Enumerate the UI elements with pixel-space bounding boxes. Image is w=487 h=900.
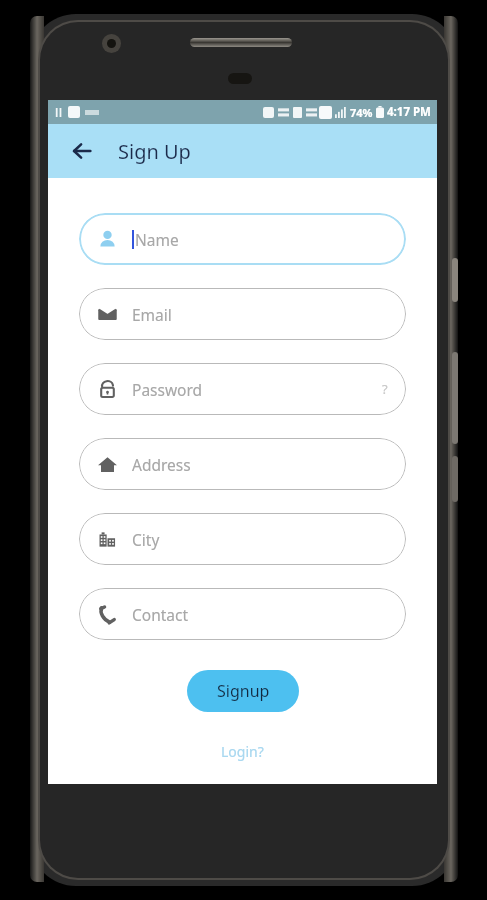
button[interactable]: Back xyxy=(62,131,102,171)
staticText: City xyxy=(132,529,160,550)
button[interactable]: City xyxy=(79,513,406,565)
staticText: Address xyxy=(132,454,191,475)
staticText: ? xyxy=(382,380,388,398)
staticText: 74% xyxy=(350,105,373,120)
staticText: Login? xyxy=(221,742,264,761)
staticText: Contact xyxy=(132,604,189,625)
staticText: Password xyxy=(132,379,203,400)
staticText: 4:17 PM xyxy=(387,104,431,120)
staticText: Signup xyxy=(217,680,270,702)
button[interactable]: Name xyxy=(79,213,406,265)
button[interactable]: Password xyxy=(79,363,406,415)
staticText: Name xyxy=(135,229,179,250)
staticText: Sign Up xyxy=(118,138,191,165)
button[interactable]: Email xyxy=(79,288,406,340)
staticText: Email xyxy=(132,304,172,325)
button[interactable]: Signup xyxy=(187,670,299,712)
button[interactable]: Login? xyxy=(221,742,264,761)
button[interactable]: Contact xyxy=(79,588,406,640)
button[interactable]: Address xyxy=(79,438,406,490)
